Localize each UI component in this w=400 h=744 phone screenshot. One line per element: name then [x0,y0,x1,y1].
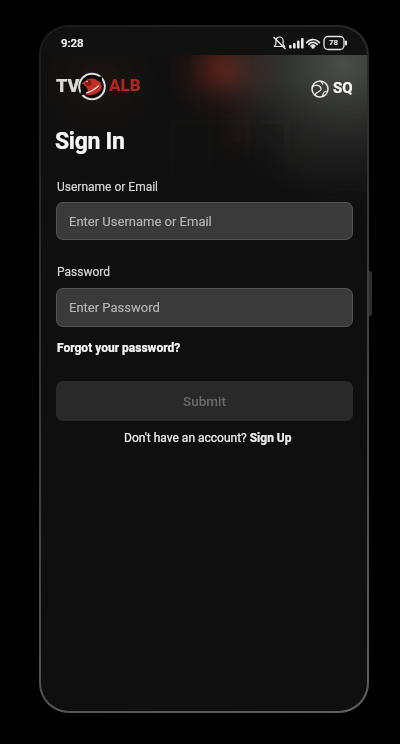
staticText: Submit [183,393,226,409]
button[interactable]: Forgot your password? [57,341,181,355]
button[interactable]: TV [54,72,174,104]
staticText: Don't have an account? Sign Up [124,431,292,445]
button[interactable]: Enter Username or Email [56,202,353,240]
staticText: ALB [109,75,141,95]
staticText: Enter Username or Email [69,214,212,229]
button[interactable]: SQ [309,75,357,103]
staticText: Password [57,265,111,279]
staticText: Sign In [55,128,125,155]
staticText: TV [56,75,80,96]
staticText: Forgot your password? [57,341,181,355]
button[interactable]: Enter Password [56,288,353,327]
staticText: 9:28 [61,36,84,49]
staticText: Username or Email [57,180,159,194]
staticText: SQ [333,79,353,97]
staticText: 78 [329,38,339,47]
staticText: Enter Password [69,300,160,315]
button[interactable]: Submit [56,381,353,421]
button[interactable]: Don't have an account? Sign Up [45,431,367,445]
